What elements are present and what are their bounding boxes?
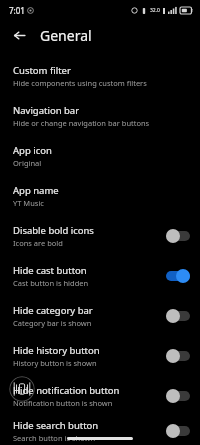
- button[interactable]: Hide history button: [0, 336, 200, 376]
- button[interactable]: Custom filter: [0, 56, 200, 96]
- button[interactable]: Off: [166, 309, 190, 323]
- staticText: App name: [13, 184, 59, 197]
- button[interactable]: App icon: [0, 136, 200, 176]
- button[interactable]: Hide cast button: [0, 256, 200, 296]
- staticText: Hide history button: [13, 344, 100, 357]
- staticText: 32.0: [150, 7, 160, 14]
- button[interactable]: Disable bold icons: [0, 216, 200, 256]
- staticText: Hide notification button: [13, 384, 120, 397]
- staticText: Custom filter: [13, 64, 71, 77]
- staticText: Hide cast button: [13, 264, 87, 277]
- staticText: 7:01: [9, 5, 25, 16]
- staticText: Cast button is hidden: [13, 278, 89, 288]
- button[interactable]: Off: [166, 389, 190, 403]
- staticText: Notification button is shown: [13, 398, 113, 408]
- staticText: Navigation bar: [13, 104, 80, 117]
- button[interactable]: On: [166, 269, 190, 283]
- staticText: Original: [13, 158, 42, 168]
- button[interactable]: Off: [166, 349, 190, 363]
- button[interactable]: App name: [0, 176, 200, 216]
- staticText: General: [40, 26, 92, 45]
- staticText: Hide search button: [13, 419, 99, 432]
- button[interactable]: Off: [166, 229, 190, 243]
- staticText: Icons are bold: [13, 238, 63, 248]
- button[interactable]: Back: [6, 22, 32, 48]
- staticText: YT Music: [13, 198, 44, 208]
- button[interactable]: Navigation bar: [0, 96, 200, 136]
- button[interactable]: Hide search button: [0, 416, 200, 445]
- button[interactable]: Vibration mode: [9, 376, 35, 402]
- button[interactable]: Off: [166, 424, 190, 438]
- staticText: App icon: [13, 144, 52, 157]
- staticText: Category bar is shown: [13, 318, 92, 328]
- staticText: Hide category bar: [13, 304, 93, 317]
- staticText: Search button is shown: [13, 433, 96, 443]
- staticText: Hide components using custom filters: [13, 78, 147, 88]
- staticText: Disable bold icons: [13, 224, 94, 237]
- button[interactable]: Hide category bar: [0, 296, 200, 336]
- staticText: Hide or change navigation bar buttons: [13, 118, 150, 128]
- staticText: History button is shown: [13, 358, 97, 368]
- button[interactable]: Hide notification button: [0, 376, 200, 416]
